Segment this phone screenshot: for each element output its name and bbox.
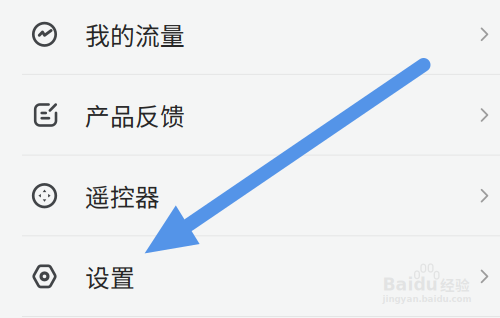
button[interactable]: 我的流量	[0, 0, 500, 75]
staticText: 经验	[440, 274, 470, 295]
staticText: jingyan.baidu.com	[382, 294, 471, 304]
staticText: 设置	[85, 258, 135, 294]
staticText: 产品反馈	[85, 97, 185, 133]
button[interactable]: 设置	[0, 236, 500, 317]
button[interactable]: 产品反馈	[0, 75, 500, 155]
staticText: 我的流量	[85, 16, 185, 52]
button[interactable]: 遥控器	[0, 155, 500, 236]
staticText: Baidu	[382, 274, 437, 295]
staticText: 遥控器	[85, 178, 160, 213]
